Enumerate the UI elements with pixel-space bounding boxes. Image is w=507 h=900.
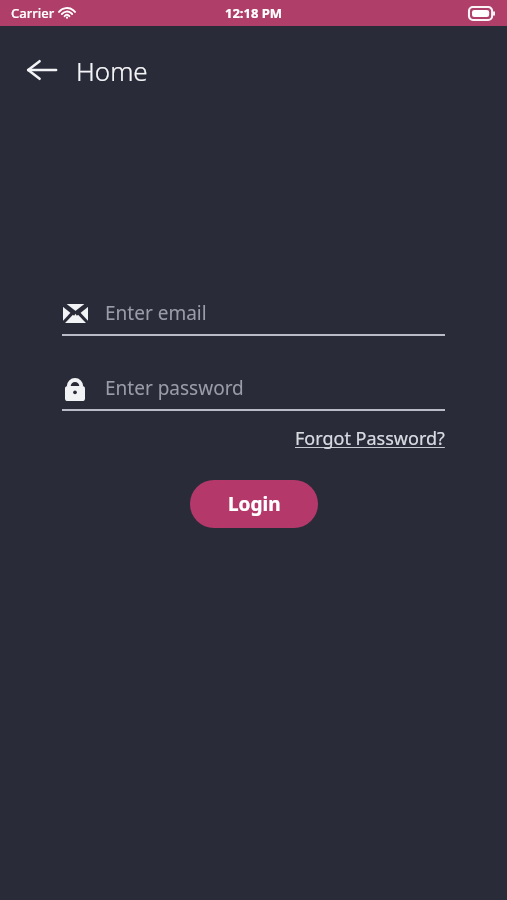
button[interactable]: Enter email xyxy=(62,300,445,336)
button[interactable]: Login xyxy=(190,480,318,528)
staticText: Carrier xyxy=(11,4,55,22)
button[interactable]: Back xyxy=(20,48,64,92)
staticText: Home xyxy=(76,53,148,88)
button[interactable]: Forgot Password? xyxy=(295,424,445,453)
staticText: 12:18 PM xyxy=(225,4,283,22)
staticText: Enter email xyxy=(105,300,207,326)
staticText: Login xyxy=(228,491,281,517)
button[interactable]: Enter password xyxy=(62,375,445,411)
staticText: Forgot Password? xyxy=(295,426,445,451)
staticText: Enter password xyxy=(105,375,244,401)
